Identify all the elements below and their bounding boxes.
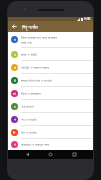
- button[interactable]: ব: [8, 100, 93, 112]
- staticText: ব: [14, 105, 16, 108]
- button[interactable]: উ: [8, 74, 93, 86]
- button[interactable]: ম: [8, 48, 93, 60]
- staticText: প্রথম তথ্য: [21, 40, 32, 45]
- staticText: নিয়ম প্রয়োজন ঘর মধ্যে প্রয়োজন: [21, 35, 57, 40]
- staticText: দি: [13, 131, 16, 134]
- staticText: সমতল উপর লাল ও সংখ্যার: [21, 78, 52, 83]
- button[interactable]: ভ: [8, 61, 93, 73]
- staticText: সা: [13, 92, 16, 95]
- button[interactable]: শ: [8, 113, 93, 125]
- staticText: স: [14, 38, 16, 41]
- staticText: প্রথম ও পরুতি: [21, 52, 37, 57]
- button[interactable]: সা: [8, 87, 93, 99]
- staticText: নিয়ম ও প্রয়োজনে: [21, 91, 41, 96]
- staticText: ভ: [14, 66, 16, 69]
- button[interactable]: Back: [10, 22, 19, 31]
- staticText: দিন ও সংখ্যায়: [21, 130, 37, 135]
- button[interactable]: প: [8, 139, 93, 150]
- staticText: প্রয়োজনে ও সমাধান সঙ্গে: [21, 142, 49, 147]
- button[interactable]: দি: [8, 126, 93, 138]
- button[interactable]: Back: [23, 150, 32, 159]
- staticText: পরুপুতি ও সমতল সমতল: [21, 65, 50, 70]
- staticText: এক সমতল: [21, 104, 34, 109]
- staticText: শ: [14, 118, 16, 121]
- staticText: শত ও সংখ্যার: [21, 117, 37, 122]
- staticText: উ: [14, 79, 16, 82]
- button[interactable]: Home: [46, 150, 55, 159]
- staticText: ম: [14, 53, 16, 56]
- staticText: প: [14, 143, 16, 146]
- staticText: 9:08: [84, 17, 91, 21]
- staticText: শিশু সংগঠন: [22, 24, 38, 30]
- button[interactable]: Recents: [70, 150, 79, 159]
- button[interactable]: স: [8, 32, 93, 47]
